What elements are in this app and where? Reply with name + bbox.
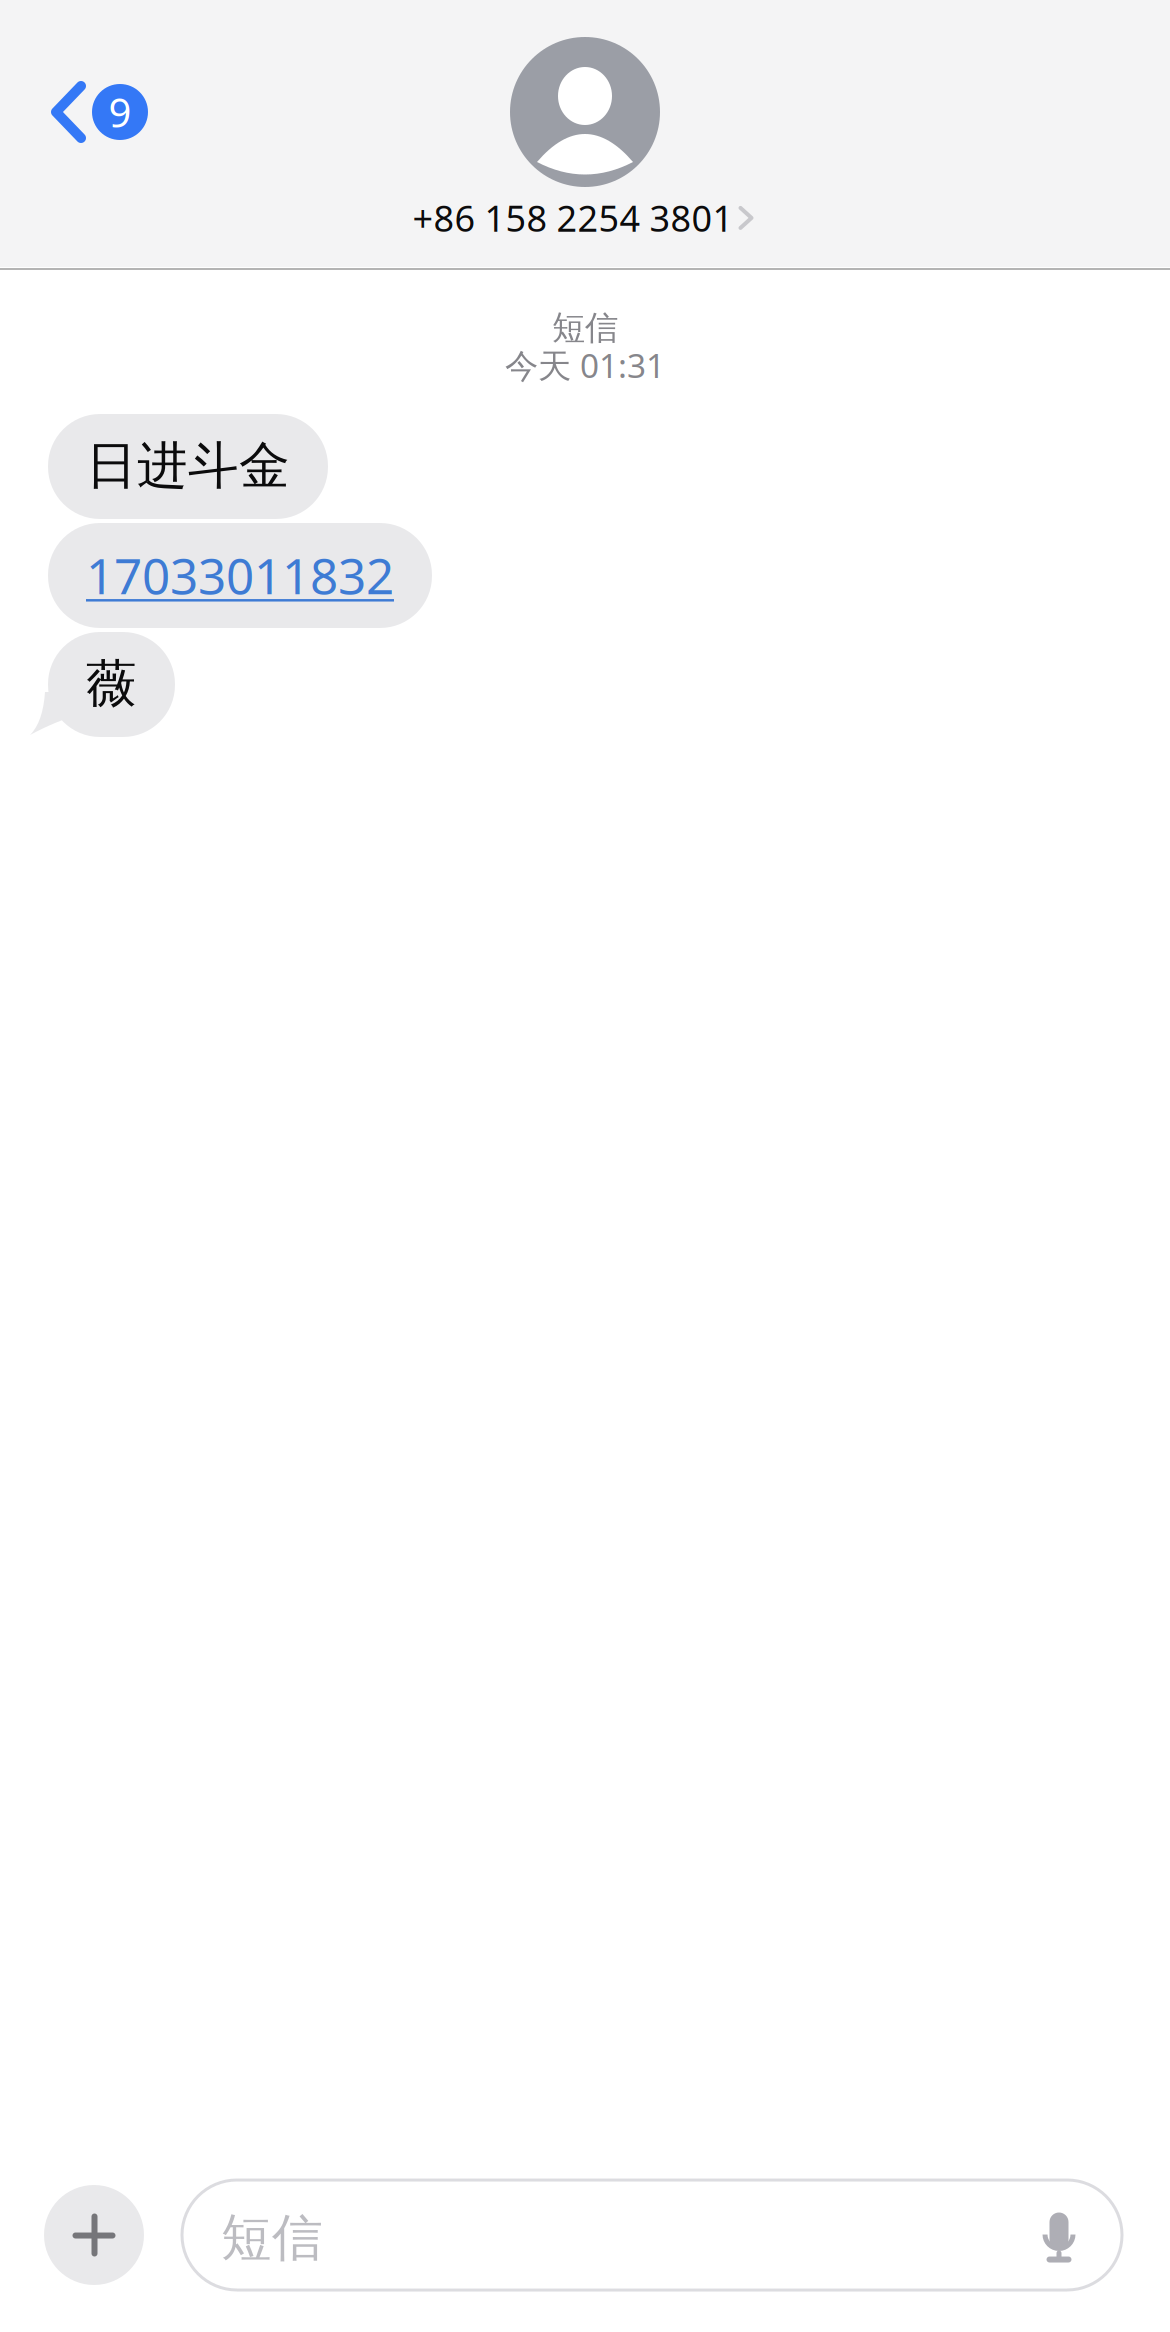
button[interactable]: Contact info for +86 158 2254 3801: [412, 187, 753, 248]
button[interactable]: Attach: [44, 2185, 144, 2285]
staticText: 日进斗金: [86, 435, 290, 497]
button[interactable]: Dictate: [1041, 2205, 1122, 2265]
button[interactable]: Back to conversations, 9 unread: [0, 62, 174, 162]
staticText: 9: [108, 85, 131, 138]
button[interactable]: 17033011832: [48, 523, 432, 628]
staticText: 今天 01:31: [505, 343, 665, 387]
staticText: 17033011832: [86, 542, 394, 608]
button[interactable]: 短信: [182, 2180, 1122, 2290]
staticText: +86 158 2254 3801: [412, 194, 733, 242]
staticText: 短信: [552, 307, 618, 348]
staticText: 薇: [86, 653, 137, 715]
staticText: 短信: [221, 2207, 323, 2269]
